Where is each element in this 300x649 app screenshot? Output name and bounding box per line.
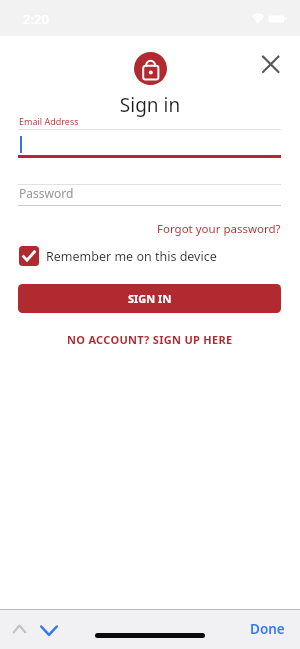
staticText: Sign in [0, 92, 300, 118]
staticText: 2:20 [23, 10, 49, 28]
button[interactable]: Forgot your password? [157, 221, 281, 237]
staticText: SIGN IN [128, 291, 172, 306]
staticText: Remember me on this device [46, 248, 217, 265]
button[interactable]: Remember me on this device [19, 246, 217, 266]
staticText: Done [250, 620, 285, 638]
button[interactable] [8, 619, 32, 639]
button[interactable]: SIGN IN [18, 284, 281, 313]
button[interactable]: Done [240, 609, 300, 649]
button[interactable] [18, 128, 281, 158]
button[interactable] [258, 51, 284, 77]
button[interactable]: NO ACCOUNT? SIGN UP HERE [67, 332, 233, 347]
staticText: Password [19, 185, 74, 201]
staticText: Email Address [19, 115, 79, 127]
button[interactable] [36, 619, 62, 641]
button[interactable] [18, 183, 281, 207]
